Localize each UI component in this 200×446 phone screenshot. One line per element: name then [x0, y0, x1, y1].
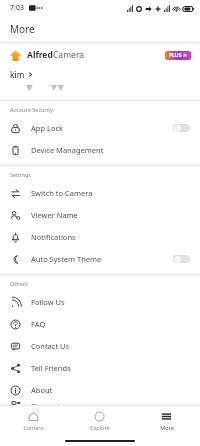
button[interactable]: FAQ	[0, 313, 200, 335]
staticText: Follow Us	[31, 297, 65, 307]
staticText: 7:03	[10, 3, 24, 13]
button[interactable]: About	[0, 379, 200, 401]
staticText: Notifications	[31, 232, 76, 242]
button[interactable]: Device Management	[0, 139, 200, 161]
button[interactable]: Explore	[66, 406, 133, 436]
staticText: Device Management	[31, 145, 104, 155]
staticText: Settings	[10, 171, 31, 178]
staticText: More	[160, 424, 174, 431]
button[interactable]: Camera	[0, 406, 66, 436]
staticText: Others	[10, 280, 28, 287]
staticText: Explore	[90, 424, 110, 431]
staticText: Switch to Camera	[31, 188, 93, 198]
button[interactable]: App Lock toggle	[173, 124, 190, 132]
staticText: App Lock	[31, 123, 64, 133]
staticText: FAQ	[31, 319, 46, 329]
button[interactable]: Notifications	[0, 226, 200, 248]
button[interactable]: PLUS ✳	[165, 51, 191, 60]
button[interactable]: Tell Friends	[0, 357, 200, 379]
button[interactable]: App Lock	[0, 117, 200, 139]
staticText: Viewer Name	[31, 210, 78, 220]
staticText: Auto System Theme	[31, 254, 102, 264]
button[interactable]: Auto System Theme toggle	[173, 255, 190, 263]
staticText: Alfred	[27, 49, 53, 61]
staticText: PLUS ✳	[169, 52, 187, 59]
button[interactable]: Auto System Theme	[0, 248, 200, 270]
staticText: Tell Friends	[31, 363, 71, 373]
staticText: Camera	[23, 424, 44, 431]
button[interactable]: Alfred	[0, 43, 200, 67]
staticText: kim	[10, 69, 25, 80]
staticText: More	[10, 22, 35, 36]
staticText: Account Security	[10, 106, 53, 113]
button[interactable]: kim	[0, 67, 200, 82]
staticText: About	[31, 385, 53, 395]
staticText: Camera	[53, 49, 84, 61]
button[interactable]: Sign out	[0, 401, 200, 405]
staticText: Sign out	[31, 401, 61, 405]
button[interactable]: Switch to Camera	[0, 182, 200, 204]
button[interactable]: More	[133, 406, 200, 436]
staticText: Contact Us	[31, 341, 70, 351]
button[interactable]: Contact Us	[0, 335, 200, 357]
button[interactable]: Viewer Name	[0, 204, 200, 226]
button[interactable]: Follow Us	[0, 291, 200, 313]
